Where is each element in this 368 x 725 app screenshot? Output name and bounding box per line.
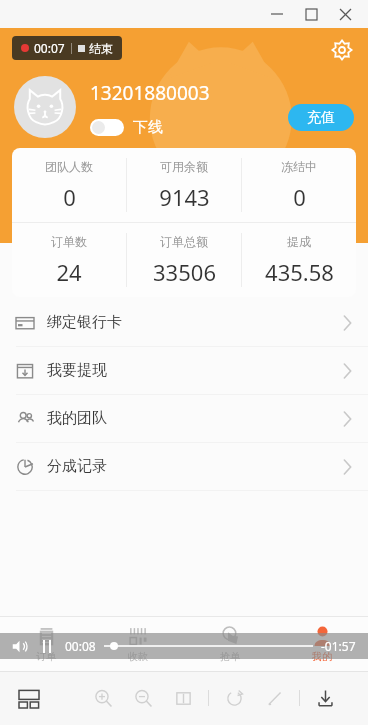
button[interactable]: 提成 <box>242 223 356 297</box>
button[interactable]: 我要提现 <box>0 347 368 394</box>
button[interactable]: Avatar <box>14 76 76 138</box>
staticText: 分成记录 <box>47 457 107 476</box>
button[interactable]: Zoom out <box>128 683 158 713</box>
button[interactable]: Minimize <box>260 1 294 27</box>
button[interactable]: Online toggle <box>90 119 124 136</box>
staticText: 订单数 <box>51 234 87 249</box>
staticText: 33506 <box>153 257 216 287</box>
staticText: 我的 <box>312 650 332 663</box>
button[interactable]: 我的团队 <box>0 395 368 442</box>
staticText: 我的团队 <box>47 409 107 428</box>
button[interactable]: Edit <box>259 683 289 713</box>
staticText: 435.58 <box>265 257 334 287</box>
button[interactable]: 收款 <box>92 617 184 671</box>
staticText: 绑定银行卡 <box>47 313 122 332</box>
staticText: 团队人数 <box>45 159 93 174</box>
button[interactable]: 分成记录 <box>0 443 368 490</box>
button[interactable]: 绑定银行卡 <box>0 299 368 346</box>
staticText: 可用余额 <box>160 159 208 174</box>
staticText: 00:08 <box>65 638 96 654</box>
staticText: 订单 <box>36 650 56 663</box>
staticText: 13201880003 <box>90 80 210 106</box>
staticText: 充值 <box>307 109 335 127</box>
staticText: 0 <box>63 182 76 212</box>
button[interactable]: Settings <box>326 34 358 66</box>
staticText: 24 <box>56 257 82 287</box>
button[interactable]: Close <box>328 1 362 27</box>
button[interactable]: 抢单 <box>184 617 276 671</box>
button[interactable]: 订单总额 <box>127 223 241 297</box>
button[interactable]: 00:07 <box>12 36 122 60</box>
staticText: 0 <box>293 182 306 212</box>
button[interactable]: 我的 <box>276 617 368 671</box>
button[interactable]: 可用余额 <box>127 148 241 222</box>
button[interactable]: Download <box>310 683 340 713</box>
button[interactable]: Maximize <box>294 1 328 27</box>
staticText: -01:57 <box>321 638 356 654</box>
staticText: 提成 <box>287 234 311 249</box>
button[interactable]: Rotate <box>219 683 249 713</box>
staticText: 结束 <box>89 41 113 56</box>
button[interactable]: 充值 <box>288 104 354 131</box>
staticText: 下线 <box>133 118 163 137</box>
staticText: 我要提现 <box>47 361 107 380</box>
staticText: 订单总额 <box>160 234 208 249</box>
button[interactable]: Zoom in <box>88 683 118 713</box>
button[interactable]: 团队人数 <box>12 148 126 222</box>
staticText: 00:07 <box>34 40 65 56</box>
staticText: 冻结中 <box>281 159 317 174</box>
button[interactable]: Pause <box>43 640 51 653</box>
staticText: 收款 <box>128 650 148 663</box>
button[interactable]: Volume <box>12 639 27 654</box>
button[interactable]: 订单数 <box>12 223 126 297</box>
staticText: 9143 <box>159 182 210 212</box>
button[interactable]: 订单 <box>0 617 92 671</box>
button[interactable]: Fit <box>168 683 198 713</box>
staticText: 抢单 <box>220 650 240 663</box>
button[interactable]: Layout <box>14 683 44 713</box>
button[interactable]: 冻结中 <box>242 148 356 222</box>
